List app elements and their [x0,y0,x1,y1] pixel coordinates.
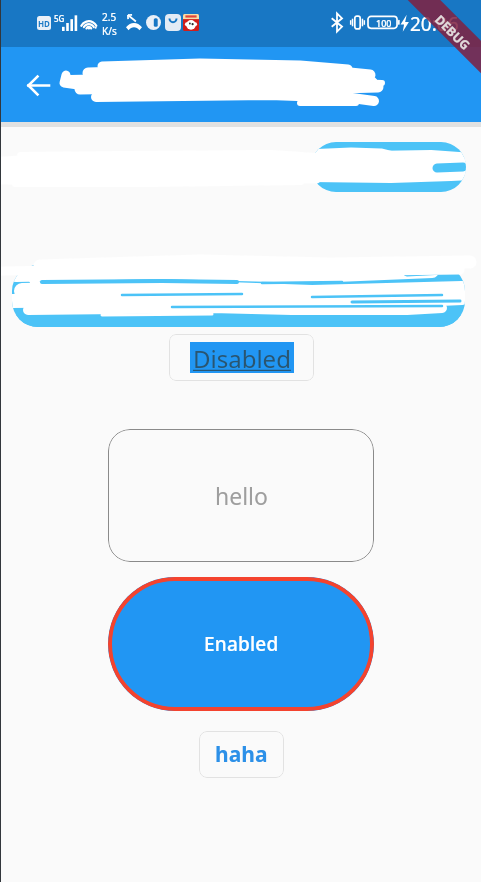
staticText: DEBUG [433,11,473,51]
button[interactable]: Back [14,61,62,109]
button[interactable]: Enabled [108,577,374,711]
button[interactable]: Disabled [169,334,314,381]
staticText: Enabled [204,631,279,657]
staticText: Disabled [193,342,291,373]
button[interactable] [12,265,465,327]
staticText: hello [215,480,268,511]
button[interactable] [311,142,466,192]
staticText: 20:06 [410,11,459,37]
staticText: K/s [102,24,117,38]
button[interactable]: hello [108,429,374,562]
staticText: haha [215,740,268,769]
staticText: 100 [376,17,392,29]
staticText: 2.5 [102,10,117,24]
staticText: HD [38,18,50,29]
button[interactable]: haha [199,731,284,778]
staticText: 5G [54,13,65,24]
